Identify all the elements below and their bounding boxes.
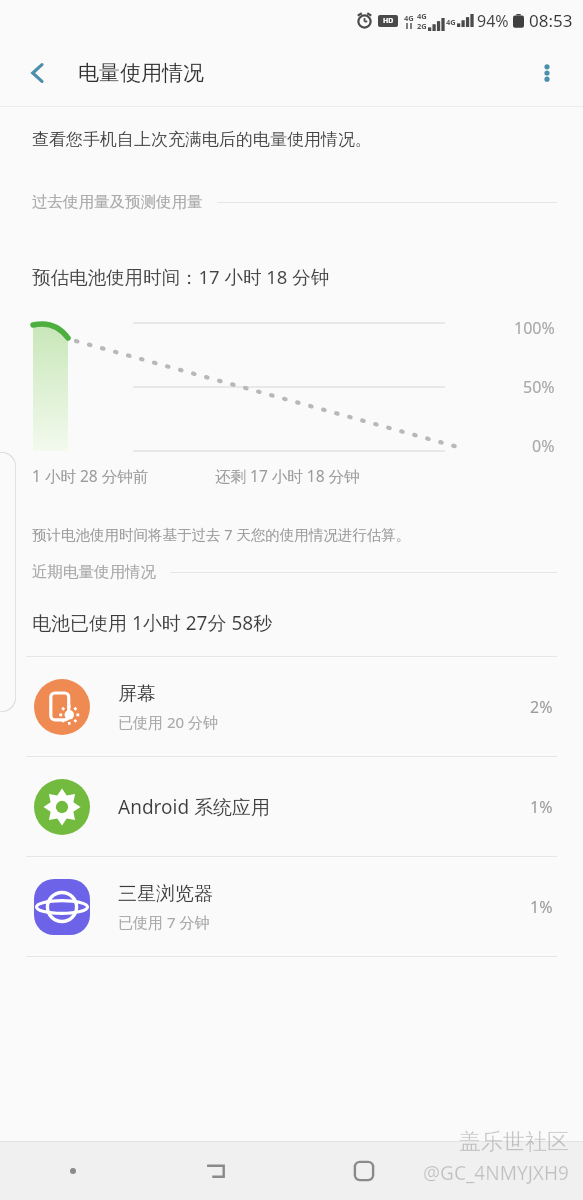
staticText: 100% [514, 317, 555, 339]
button[interactable]: Back [145, 1142, 291, 1200]
staticText: 2G [417, 21, 427, 31]
button[interactable]: 三星浏览器 [0, 857, 583, 956]
staticText: 50% [523, 376, 555, 398]
button[interactable]: Android 系统应用 [0, 757, 583, 856]
staticText: 已使用 20 分钟 [118, 712, 218, 732]
staticText: 电池已使用 1小时 27分 58秒 [32, 610, 273, 636]
button[interactable]: 屏幕 [0, 657, 583, 756]
staticText: 盖乐世社区 [459, 1128, 569, 1156]
staticText: 还剩 17 小时 18 分钟 [215, 465, 360, 486]
staticText: 查看您手机自上次充满电后的电量使用情况。 [32, 129, 372, 150]
staticText: 1% [530, 796, 553, 818]
staticText: @GC_4NMYJXH9 [423, 1160, 569, 1186]
staticText: 电量使用情况 [78, 60, 204, 86]
staticText: 预计电池使用时间将基于过去 7 天您的使用情况进行估算。 [32, 524, 411, 544]
staticText: 94% [477, 10, 509, 32]
staticText: Android 系统应用 [118, 794, 271, 820]
button[interactable]: More options [521, 47, 573, 99]
staticText: HD [383, 16, 394, 26]
staticText: 1% [530, 896, 553, 918]
staticText: 4G [404, 13, 414, 23]
staticText: 08:53 [529, 9, 573, 32]
staticText: 2% [530, 696, 553, 718]
staticText: 预估电池使用时间：17 小时 18 分钟 [32, 264, 330, 289]
button[interactable]: Recents [0, 1142, 145, 1200]
button[interactable]: Back [12, 47, 64, 99]
staticText: 三星浏览器 [118, 882, 213, 906]
staticText: 4G [417, 11, 427, 21]
staticText: 1 小时 28 分钟前 [32, 465, 149, 486]
button[interactable]: Home [291, 1142, 437, 1200]
staticText: 过去使用量及预测使用量 [32, 192, 203, 212]
staticText: 4G [446, 17, 456, 27]
staticText: 屏幕 [118, 682, 156, 706]
staticText: 近期电量使用情况 [32, 562, 156, 582]
staticText: 0% [532, 435, 555, 457]
staticText: 已使用 7 分钟 [118, 912, 210, 932]
